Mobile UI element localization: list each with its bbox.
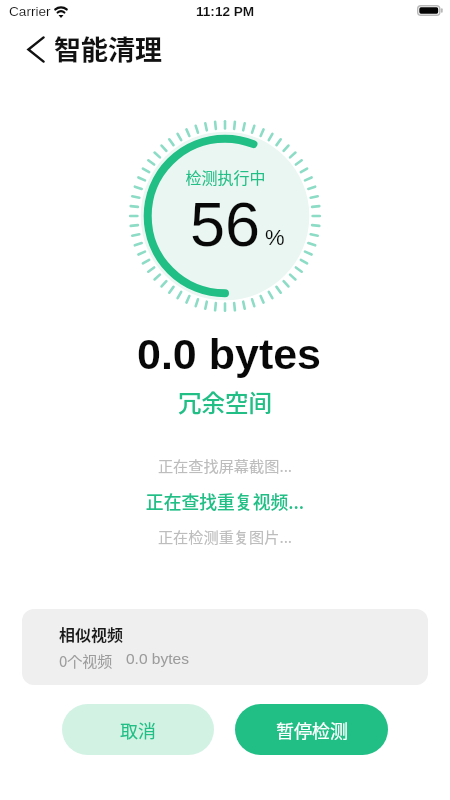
staticText: 取消 — [120, 717, 156, 743]
staticText: 冗余空间 — [0, 385, 450, 419]
staticText: 0个视频 — [59, 650, 113, 672]
button[interactable]: 相似视频 — [22, 609, 428, 685]
staticText: 0.0 bytes — [126, 650, 189, 667]
staticText: % — [265, 225, 285, 250]
button[interactable]: 暂停检测 — [235, 704, 388, 755]
staticText: 正在查找屏幕截图... — [0, 454, 450, 476]
staticText: 11:12 PM — [196, 4, 255, 19]
staticText: 相似视频 — [59, 622, 124, 645]
staticText: 0.0 bytes — [4, 330, 450, 378]
staticText: 正在查找重复视频... — [0, 488, 450, 514]
button[interactable]: Back — [21, 34, 51, 64]
staticText: 智能清理 — [54, 29, 162, 68]
staticText: 56 — [190, 189, 261, 259]
staticText: 正在检测重复图片... — [0, 525, 450, 547]
staticText: 检测执行中 — [185, 165, 266, 188]
staticText: 暂停检测 — [276, 717, 348, 743]
button[interactable]: 取消 — [62, 704, 214, 755]
staticText: Carrier — [9, 4, 51, 19]
